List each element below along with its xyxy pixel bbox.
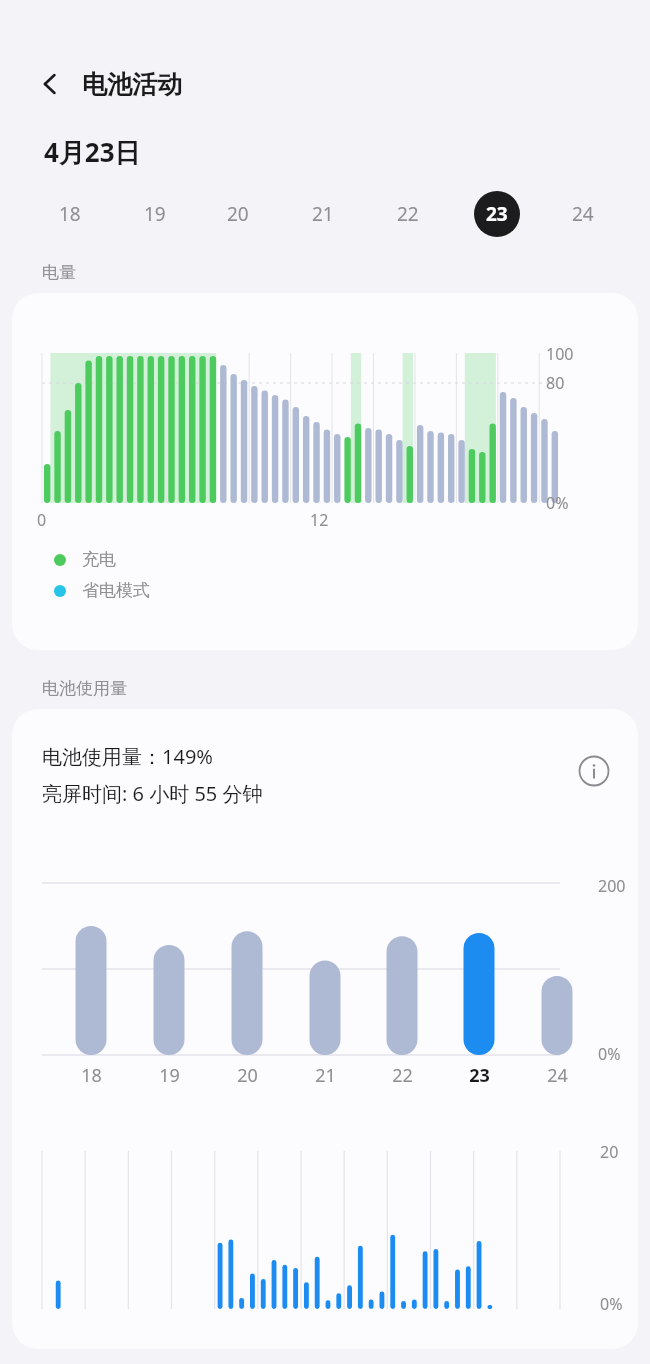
staticText: 80 <box>546 372 565 394</box>
staticText: 21 <box>312 201 334 227</box>
button[interactable]: 20 <box>212 188 264 240</box>
staticText: 省电模式 <box>82 580 150 601</box>
staticText: 0% <box>598 1043 621 1065</box>
button[interactable]: Information <box>572 749 616 793</box>
staticText: 12 <box>310 509 329 531</box>
staticText: 21 <box>315 1063 336 1088</box>
staticText: 22 <box>397 201 419 227</box>
staticText: 19 <box>144 201 166 227</box>
staticText: 18 <box>81 1063 102 1088</box>
staticText: 24 <box>547 1063 568 1088</box>
staticText: 0% <box>546 492 569 514</box>
staticText: 电池活动 <box>82 69 182 100</box>
staticText: 20 <box>237 1063 258 1088</box>
staticText: 电池使用量 <box>42 678 127 699</box>
button[interactable]: 21 <box>297 188 349 240</box>
staticText: 100 <box>546 343 574 365</box>
staticText: 23 <box>486 201 508 227</box>
staticText: 20 <box>600 1141 619 1163</box>
button[interactable]: 22 <box>382 188 434 240</box>
staticText: 0% <box>600 1293 623 1315</box>
staticText: 20 <box>227 201 249 227</box>
button[interactable]: 24 <box>557 188 609 240</box>
staticText: 充电 <box>82 549 116 570</box>
button[interactable]: Back <box>28 62 72 106</box>
staticText: 200 <box>598 875 626 897</box>
staticText: 24 <box>572 201 594 227</box>
staticText: 23 <box>469 1063 490 1088</box>
button[interactable]: 19 <box>129 188 181 240</box>
button[interactable]: 18 <box>44 188 96 240</box>
staticText: 0 <box>37 509 47 531</box>
staticText: 19 <box>159 1063 180 1088</box>
staticText: 22 <box>392 1063 413 1088</box>
staticText: 18 <box>59 201 81 227</box>
staticText: 亮屏时间: 6 小时 55 分钟 <box>42 780 263 807</box>
button[interactable]: 23 <box>471 188 523 240</box>
staticText: 电量 <box>42 262 76 283</box>
staticText: 4月23日 <box>44 134 141 170</box>
staticText: 电池使用量：149% <box>42 743 213 770</box>
